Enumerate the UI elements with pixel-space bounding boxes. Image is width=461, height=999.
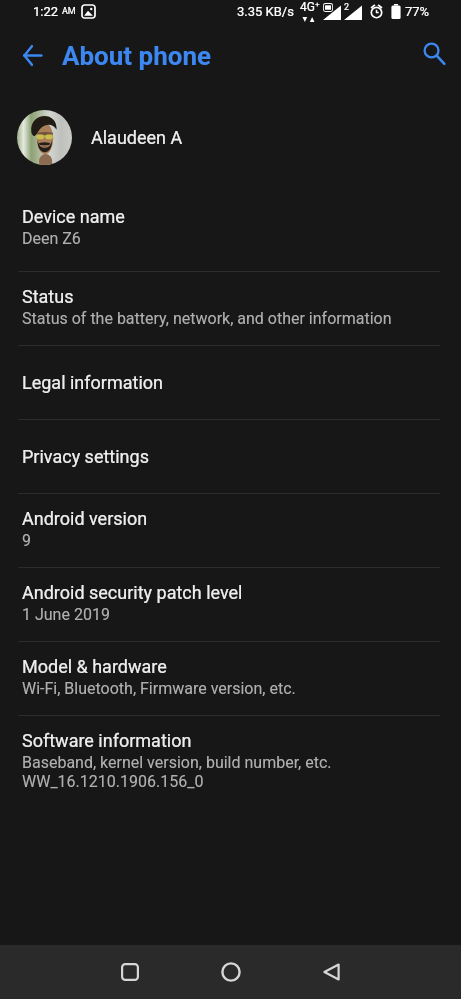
staticText: WW_16.1210.1906.156_0 — [22, 772, 204, 791]
button[interactable]: Android security patch level — [0, 568, 461, 641]
button[interactable]: Device name — [0, 198, 461, 271]
staticText: Android security patch level — [22, 582, 243, 603]
button[interactable]: Software information — [0, 716, 461, 811]
button[interactable]: Android version — [0, 494, 461, 567]
staticText: + — [315, 0, 316, 9]
staticText: Status of the battery, network, and othe… — [22, 309, 392, 328]
button[interactable]: Alaudeen A — [0, 84, 461, 198]
staticText: Baseband, kernel version, build number, … — [22, 753, 332, 772]
button[interactable]: Legal information — [0, 346, 461, 419]
button[interactable]: Home — [207, 945, 255, 999]
staticText: Android version — [22, 508, 148, 529]
button[interactable]: Status — [0, 272, 461, 345]
staticText: Deen Z6 — [22, 229, 81, 248]
staticText: 4G — [300, 0, 315, 14]
staticText: Device name — [22, 206, 125, 227]
staticText: Wi-Fi, Bluetooth, Firmware version, etc. — [22, 679, 296, 698]
button[interactable]: Search — [410, 25, 458, 82]
staticText: Legal information — [22, 372, 163, 393]
staticText: Software information — [22, 730, 192, 751]
button[interactable]: Model & hardware — [0, 642, 461, 715]
staticText: 77% — [405, 4, 430, 19]
staticText: Privacy settings — [22, 446, 149, 467]
staticText: About phone — [62, 41, 212, 71]
staticText: Alaudeen A — [91, 127, 183, 148]
button[interactable]: Back — [307, 945, 355, 999]
button[interactable]: Recent apps — [106, 945, 154, 999]
staticText: 1 June 2019 — [22, 605, 110, 624]
staticText: AM — [62, 6, 76, 17]
staticText: Model & hardware — [22, 656, 167, 677]
button[interactable]: Privacy settings — [0, 420, 461, 493]
staticText: 1:22 — [33, 4, 59, 19]
staticText: 3.35 KB/s — [237, 4, 294, 19]
button[interactable]: Back — [8, 27, 56, 84]
staticText: 9 — [22, 531, 31, 550]
staticText: Status — [22, 286, 74, 307]
staticText: 2 — [344, 2, 350, 13]
